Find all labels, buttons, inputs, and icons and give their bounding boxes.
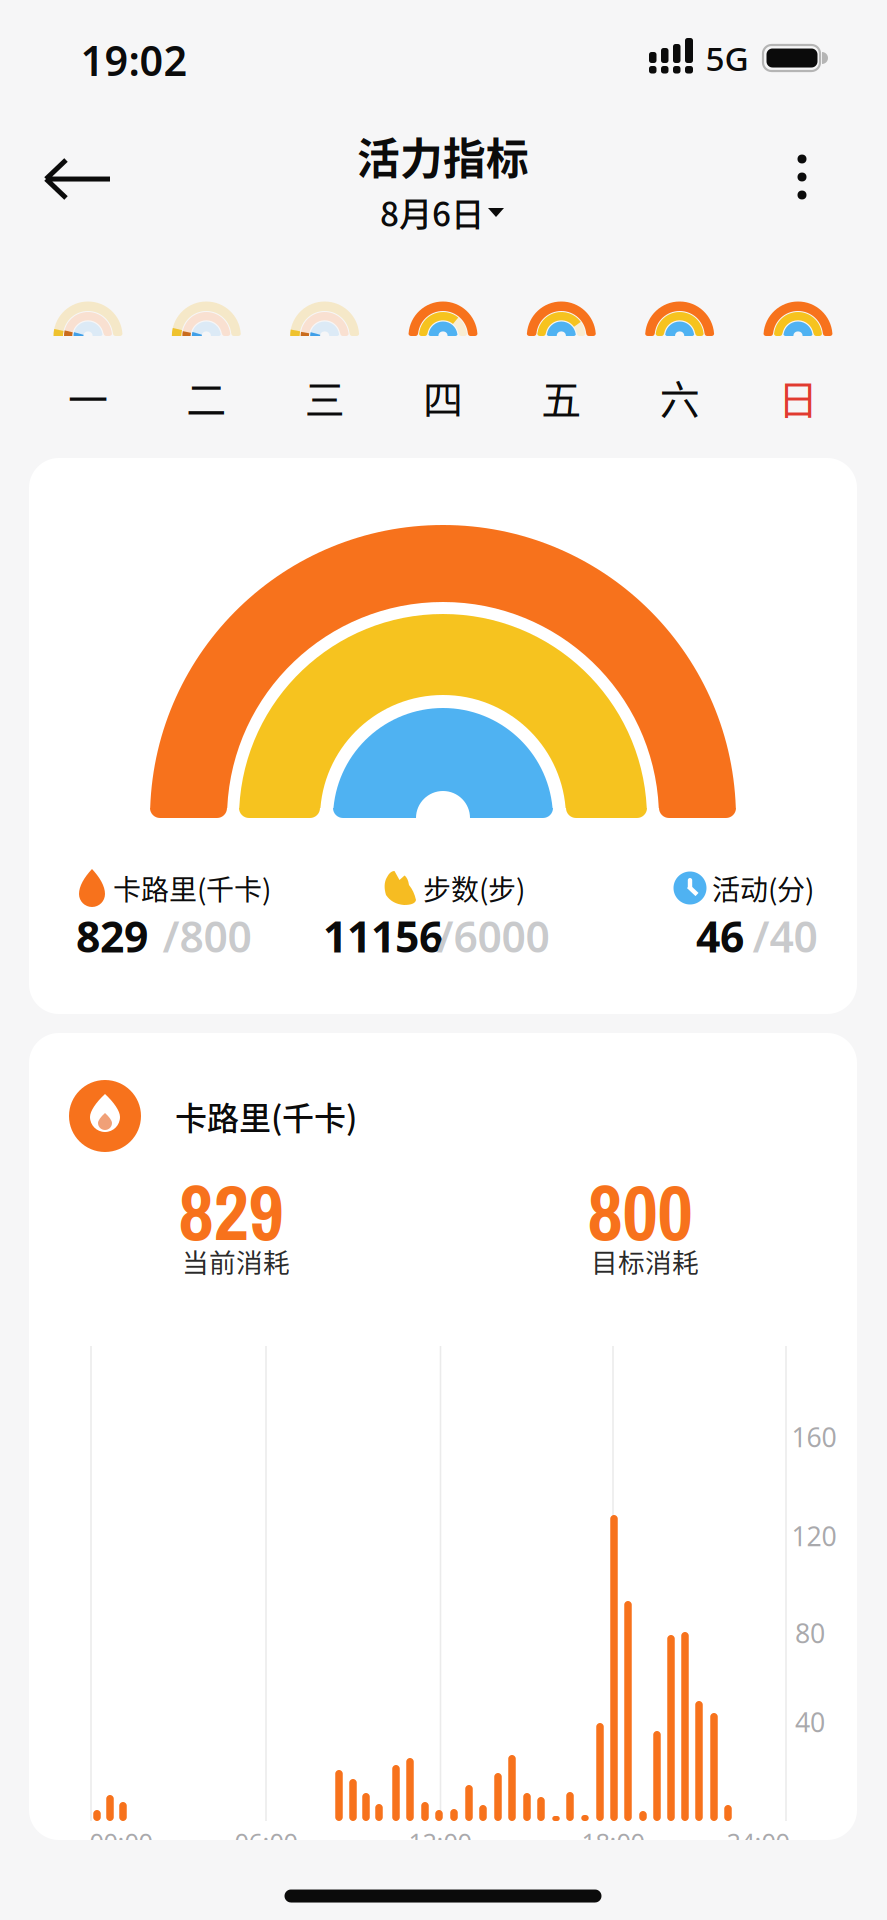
- staticText: 日: [778, 368, 818, 426]
- staticText: 当前消耗: [182, 1242, 290, 1280]
- button[interactable]: [32, 148, 124, 210]
- staticText: 步数(步): [423, 868, 525, 908]
- staticText: 活动(分): [712, 868, 814, 908]
- button[interactable]: 五: [502, 290, 620, 430]
- staticText: 五: [541, 368, 581, 426]
- staticText: 120: [791, 1518, 836, 1554]
- button[interactable]: 8月6日: [368, 190, 518, 234]
- button[interactable]: 日: [739, 290, 857, 430]
- staticText: 12:00: [408, 1825, 471, 1859]
- staticText: 卡路里(千卡): [175, 1093, 357, 1139]
- staticText: 六: [660, 368, 700, 426]
- staticText: 活力指标: [357, 125, 529, 187]
- staticText: 四: [423, 368, 463, 426]
- staticText: 二: [186, 368, 226, 426]
- staticText: 800: [587, 1160, 692, 1264]
- staticText: 8月6日: [380, 188, 484, 236]
- staticText: 160: [791, 1419, 836, 1455]
- staticText: 00:00: [89, 1825, 152, 1859]
- staticText: 06:00: [234, 1825, 297, 1859]
- staticText: 46: [696, 908, 744, 964]
- staticText: 一: [68, 368, 108, 426]
- staticText: 24:00: [726, 1825, 789, 1859]
- staticText: 19:02: [80, 33, 187, 87]
- button[interactable]: 一: [29, 290, 147, 430]
- button[interactable]: 三: [266, 290, 384, 430]
- staticText: /800: [162, 908, 251, 964]
- staticText: 829: [76, 908, 148, 964]
- button[interactable]: [780, 149, 824, 205]
- staticText: /6000: [436, 908, 549, 964]
- staticText: 40: [795, 1704, 825, 1740]
- staticText: 目标消耗: [591, 1242, 699, 1280]
- button[interactable]: 六: [621, 290, 739, 430]
- staticText: 11156: [323, 908, 443, 964]
- staticText: 829: [178, 1160, 283, 1264]
- staticText: 18:00: [581, 1825, 644, 1859]
- button[interactable]: 四: [384, 290, 502, 430]
- staticText: 80: [795, 1615, 825, 1651]
- button[interactable]: 二: [147, 290, 265, 430]
- staticText: 5G: [705, 36, 748, 80]
- staticText: 卡路里(千卡): [113, 868, 271, 908]
- staticText: /40: [752, 908, 817, 964]
- staticText: 三: [305, 368, 345, 426]
